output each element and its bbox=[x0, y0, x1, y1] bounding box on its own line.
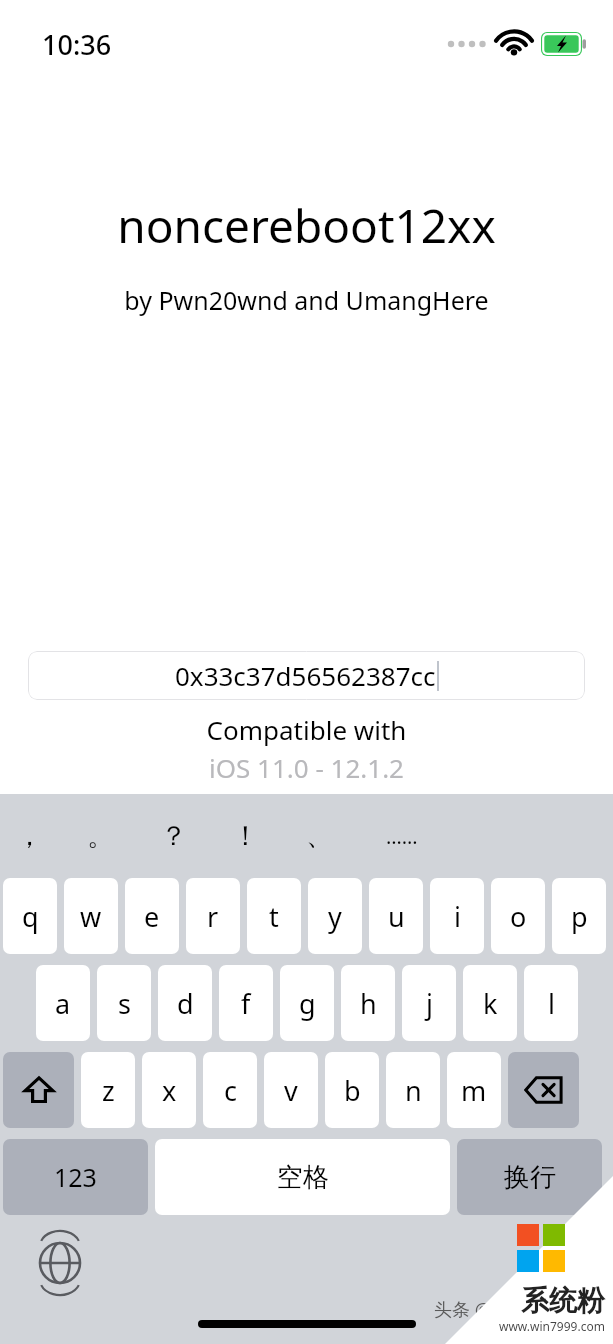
staticText: p bbox=[571, 898, 588, 935]
staticText: s bbox=[118, 985, 131, 1022]
button[interactable]: o bbox=[491, 878, 545, 954]
staticText: www.win7999.com bbox=[499, 1318, 605, 1334]
button[interactable]: 换行 bbox=[457, 1139, 602, 1215]
staticText: r bbox=[207, 898, 219, 935]
button[interactable]: n bbox=[386, 1052, 440, 1128]
staticText: y bbox=[328, 898, 342, 935]
button[interactable]: w bbox=[64, 878, 118, 954]
button[interactable]: i bbox=[430, 878, 484, 954]
staticText: v bbox=[284, 1072, 298, 1109]
button[interactable]: z bbox=[81, 1052, 135, 1128]
button[interactable]: h bbox=[341, 965, 395, 1041]
button[interactable]: d bbox=[158, 965, 212, 1041]
button[interactable]: 、 bbox=[284, 794, 354, 878]
button[interactable]: e bbox=[125, 878, 179, 954]
button[interactable]: 。 bbox=[65, 794, 135, 878]
staticText: ？ bbox=[160, 819, 187, 853]
button[interactable]: ， bbox=[0, 794, 64, 878]
staticText: …… bbox=[386, 823, 418, 850]
staticText: iOS 11.0 - 12.1.2 bbox=[0, 750, 613, 785]
button[interactable]: ？ bbox=[138, 794, 208, 878]
button[interactable]: k bbox=[463, 965, 517, 1041]
staticText: c bbox=[224, 1072, 237, 1109]
button[interactable]: Shift bbox=[3, 1052, 74, 1128]
staticText: w bbox=[80, 898, 102, 935]
staticText: 、 bbox=[306, 819, 333, 853]
staticText: Compatible with bbox=[0, 712, 613, 747]
staticText: a bbox=[55, 985, 71, 1022]
button[interactable]: m bbox=[447, 1052, 501, 1128]
staticText: h bbox=[360, 985, 377, 1022]
staticText: 头条 @C bbox=[434, 1297, 503, 1322]
button[interactable]: …… bbox=[367, 794, 437, 878]
button[interactable]: 0x33c37d56562387cc bbox=[28, 651, 585, 700]
staticText: u bbox=[388, 898, 405, 935]
button[interactable]: u bbox=[369, 878, 423, 954]
button[interactable]: b bbox=[325, 1052, 379, 1128]
button[interactable]: l bbox=[524, 965, 578, 1041]
button[interactable]: Dictation bbox=[527, 1235, 583, 1291]
staticText: b bbox=[344, 1072, 361, 1109]
button[interactable]: j bbox=[402, 965, 456, 1041]
button[interactable]: a bbox=[36, 965, 90, 1041]
staticText: z bbox=[102, 1072, 115, 1109]
button[interactable]: 空格 bbox=[155, 1139, 450, 1215]
button[interactable]: g bbox=[280, 965, 334, 1041]
staticText: g bbox=[299, 985, 316, 1022]
staticText: 123 bbox=[54, 1160, 97, 1194]
staticText: 10:36 bbox=[42, 26, 112, 63]
staticText: ！ bbox=[232, 819, 259, 853]
button[interactable]: 123 bbox=[3, 1139, 148, 1215]
staticText: d bbox=[177, 985, 194, 1022]
staticText: k bbox=[483, 985, 498, 1022]
button[interactable]: Backspace bbox=[508, 1052, 579, 1128]
staticText: j bbox=[426, 985, 433, 1022]
staticText: noncereboot12xx bbox=[0, 194, 613, 257]
staticText: 。 bbox=[87, 819, 114, 853]
button[interactable]: x bbox=[142, 1052, 196, 1128]
staticText: 换行 bbox=[504, 1161, 556, 1194]
button[interactable]: t bbox=[247, 878, 301, 954]
button[interactable]: s bbox=[97, 965, 151, 1041]
button[interactable]: ！ bbox=[210, 794, 280, 878]
staticText: 空格 bbox=[277, 1161, 329, 1194]
staticText: l bbox=[548, 985, 555, 1022]
staticText: f bbox=[241, 985, 251, 1022]
staticText: m bbox=[461, 1072, 487, 1109]
staticText: by Pwn20wnd and UmangHere bbox=[0, 283, 613, 317]
staticText: ， bbox=[16, 819, 43, 853]
staticText: o bbox=[510, 898, 527, 935]
button[interactable]: v bbox=[264, 1052, 318, 1128]
staticText: 系统粉 bbox=[521, 1283, 605, 1318]
staticText: e bbox=[144, 898, 160, 935]
button[interactable]: y bbox=[308, 878, 362, 954]
button[interactable]: r bbox=[186, 878, 240, 954]
staticText: 0x33c37d56562387cc bbox=[175, 658, 436, 693]
button[interactable]: q bbox=[3, 878, 57, 954]
staticText: q bbox=[22, 898, 39, 935]
staticText: n bbox=[405, 1072, 422, 1109]
staticText: t bbox=[269, 898, 279, 935]
button[interactable]: p bbox=[552, 878, 606, 954]
button[interactable]: f bbox=[219, 965, 273, 1041]
staticText: x bbox=[162, 1072, 177, 1109]
button[interactable]: c bbox=[203, 1052, 257, 1128]
button[interactable]: Change keyboard bbox=[32, 1235, 88, 1291]
staticText: i bbox=[454, 898, 461, 935]
